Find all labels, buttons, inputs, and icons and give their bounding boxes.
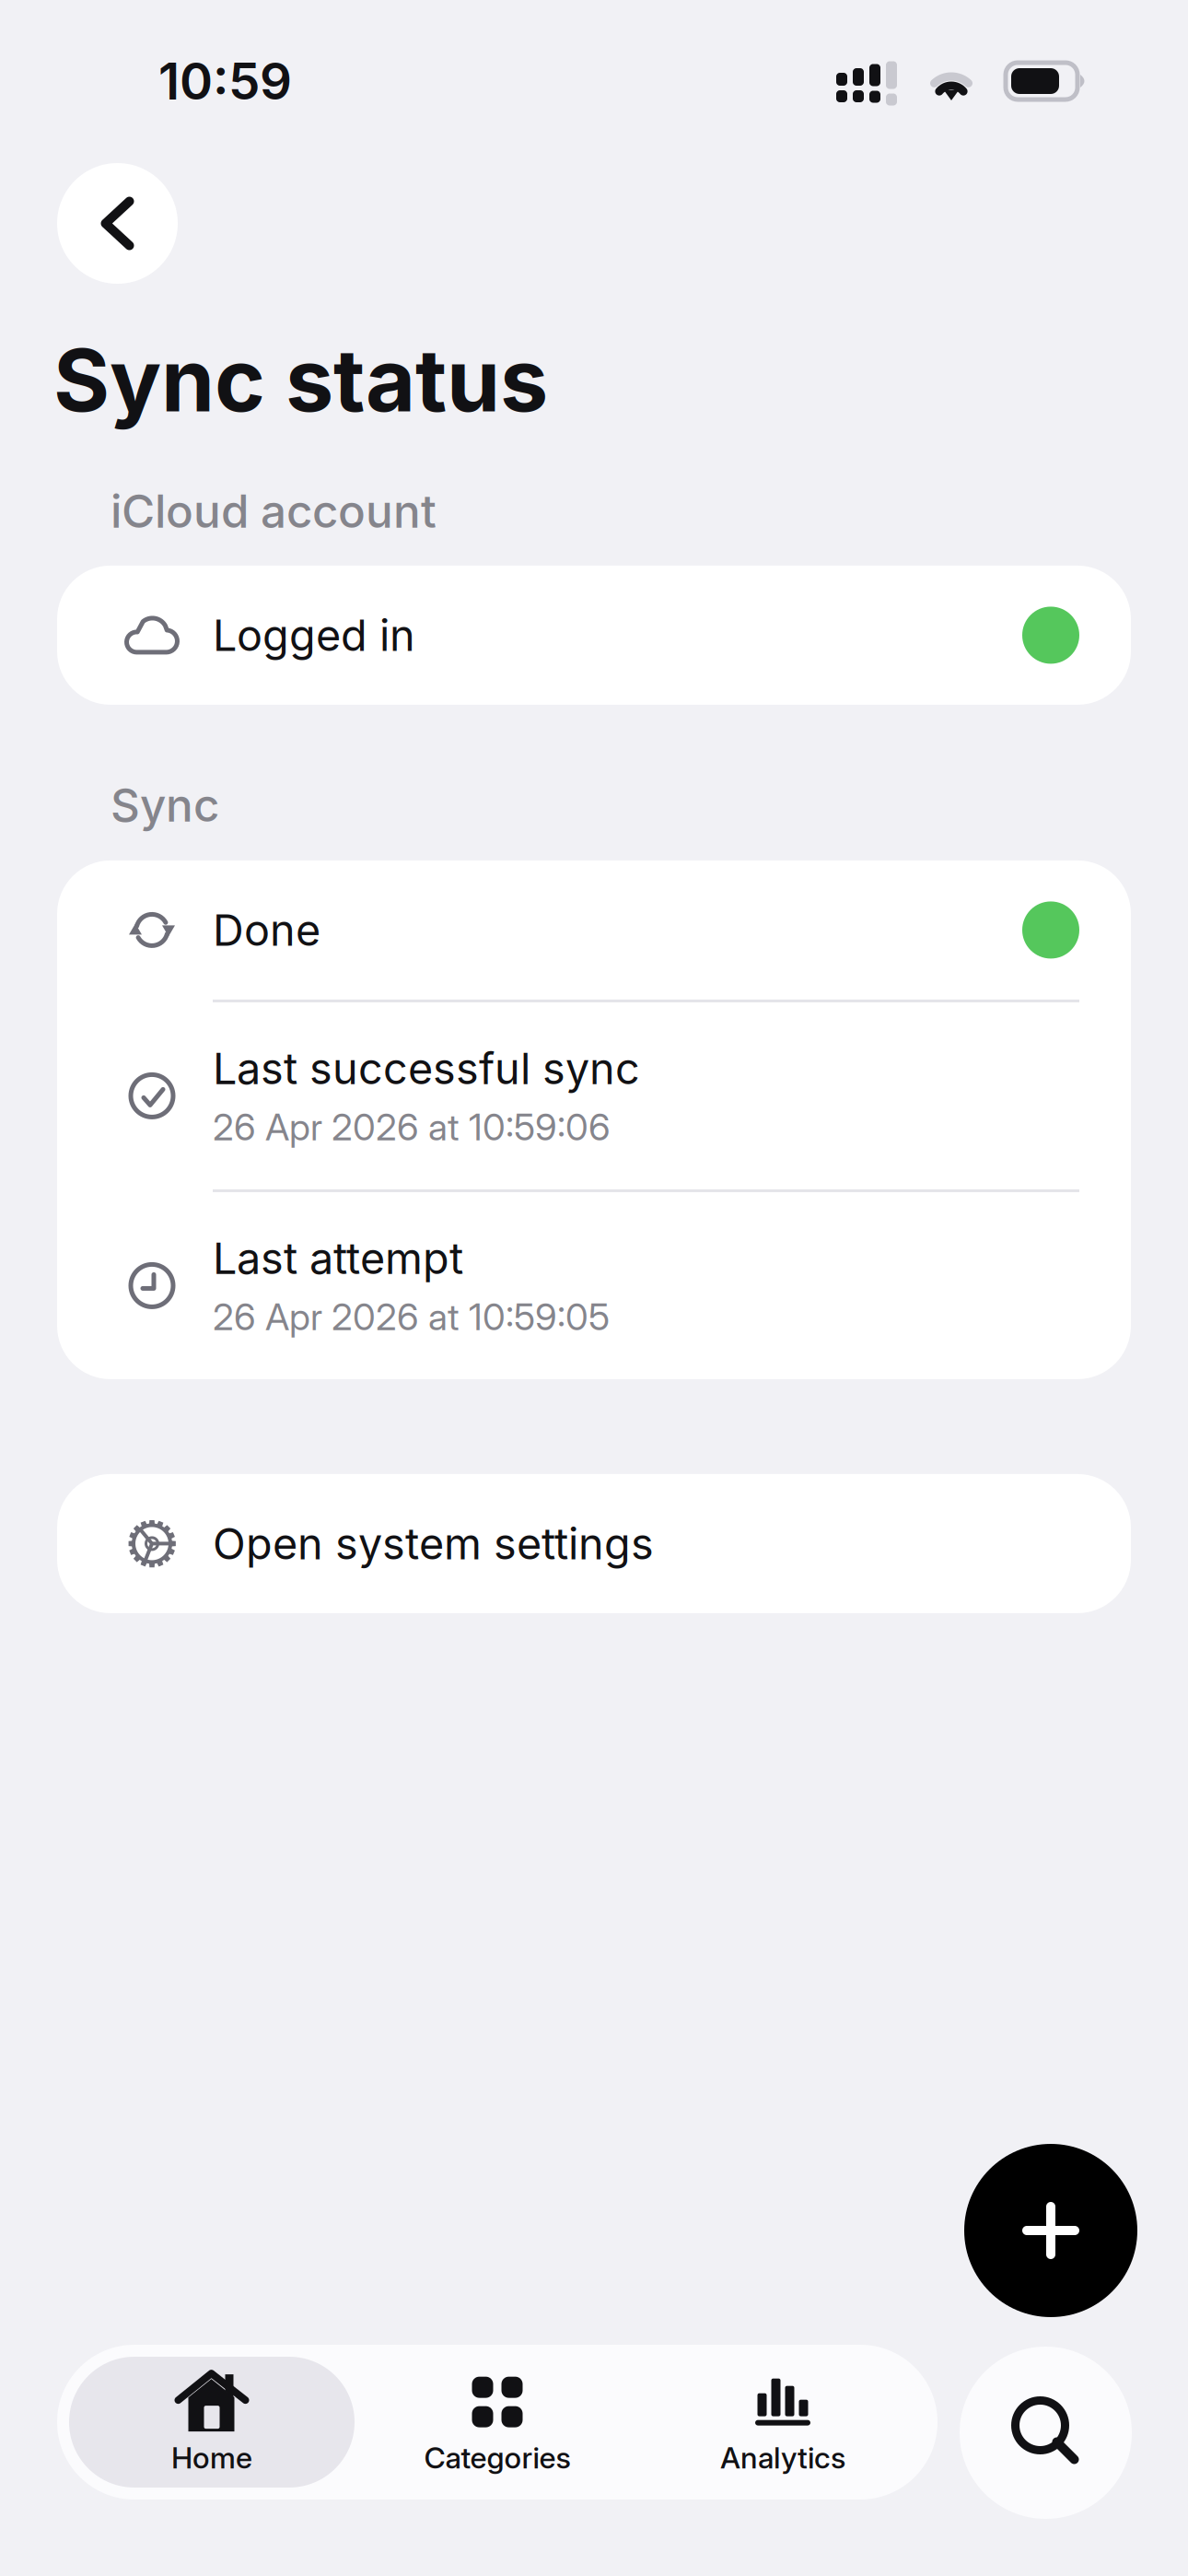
- staticText: Last attempt: [213, 1232, 463, 1284]
- staticText: Categories: [424, 2440, 571, 2475]
- staticText: 26 Apr 2026 at 10:59:05: [213, 1294, 610, 1339]
- staticText: Logged in: [213, 609, 415, 661]
- button[interactable]: Search: [960, 2347, 1132, 2519]
- button[interactable]: Done: [57, 860, 1131, 1000]
- staticText: 26 Apr 2026 at 10:59:06: [213, 1105, 611, 1149]
- staticText: Home: [171, 2440, 252, 2475]
- button[interactable]: Categories: [355, 2357, 640, 2488]
- staticText: Analytics: [720, 2440, 845, 2475]
- staticText: Sync status: [53, 328, 548, 432]
- staticText: Last successful sync: [213, 1042, 640, 1095]
- staticText: iCloud account: [111, 484, 437, 539]
- staticText: Open system settings: [213, 1518, 654, 1570]
- staticText: Sync: [111, 778, 219, 833]
- button[interactable]: Open system settings: [57, 1474, 1131, 1613]
- button[interactable]: Last successful sync: [57, 1002, 1131, 1189]
- staticText: 10:59: [158, 51, 292, 111]
- button[interactable]: Analytics: [640, 2357, 926, 2488]
- staticText: Done: [213, 904, 320, 956]
- button[interactable]: Add: [964, 2144, 1137, 2317]
- button[interactable]: Back: [57, 163, 178, 284]
- button[interactable]: Home: [69, 2357, 355, 2488]
- button[interactable]: Logged in: [57, 566, 1131, 705]
- button[interactable]: Last attempt: [57, 1192, 1131, 1379]
